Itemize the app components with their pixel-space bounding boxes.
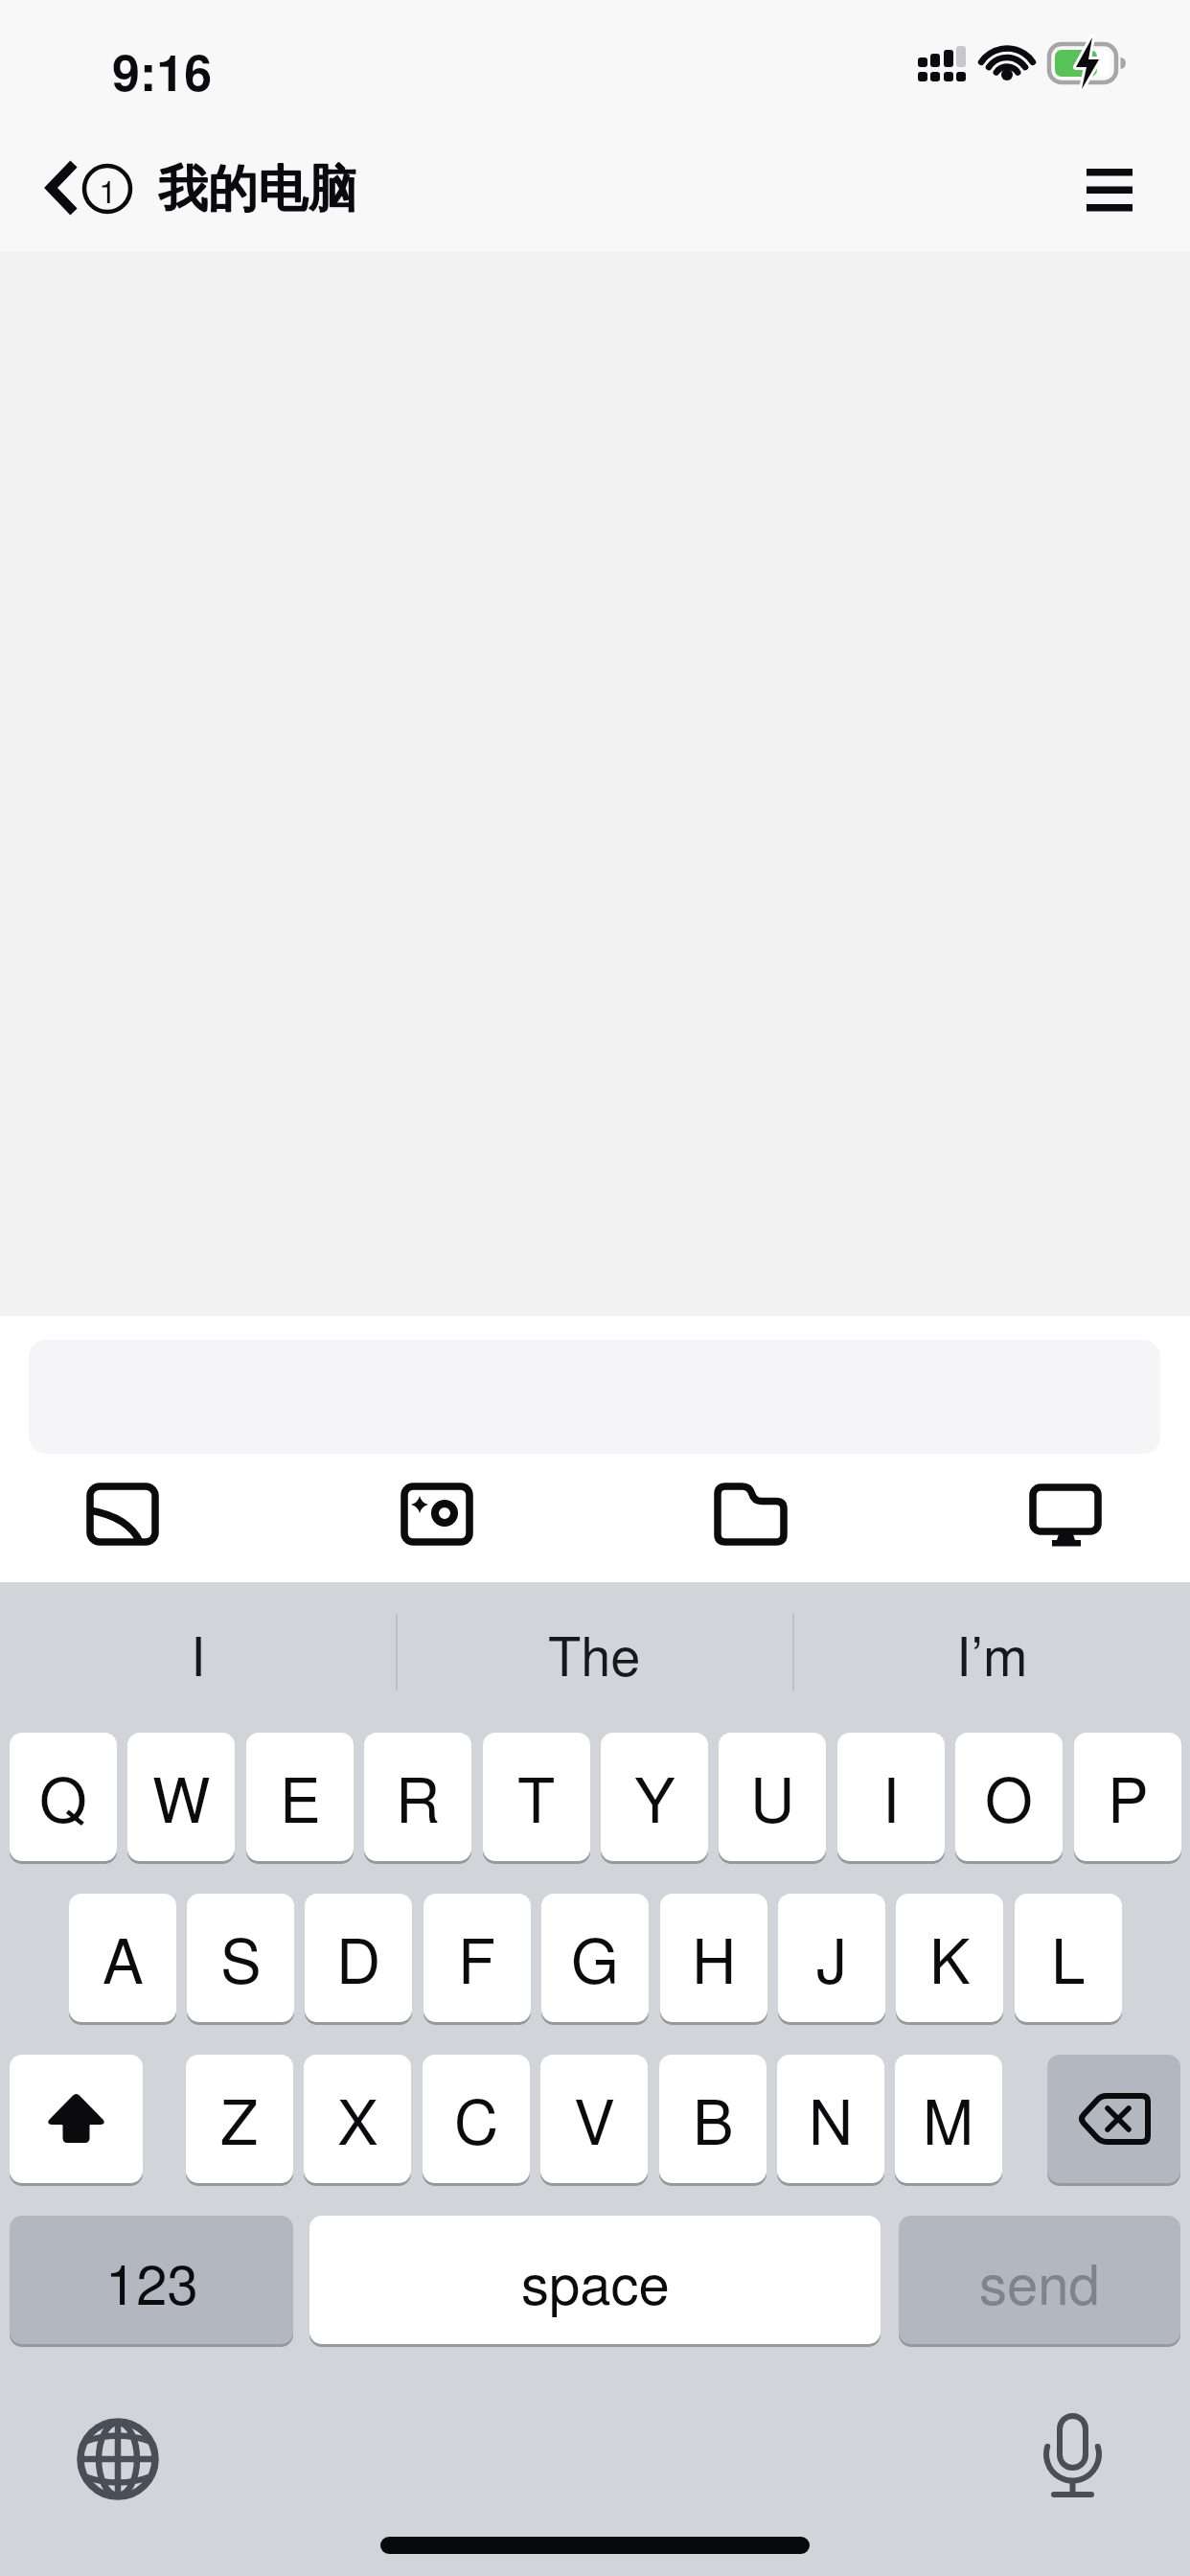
staticText: F: [458, 1914, 496, 2002]
button[interactable]: [1035, 2402, 1111, 2509]
button[interactable]: I’m: [793, 1602, 1190, 1704]
staticText: Y: [634, 1753, 675, 1841]
staticText: 我的电脑: [159, 157, 358, 220]
button[interactable]: G: [541, 1894, 649, 2022]
staticText: I’m: [956, 1615, 1028, 1691]
button[interactable]: F: [423, 1894, 531, 2022]
button[interactable]: I: [837, 1733, 945, 1861]
button[interactable]: Z: [186, 2055, 293, 2183]
button[interactable]: X: [304, 2055, 411, 2183]
staticText: H: [692, 1914, 737, 2002]
button[interactable]: D: [305, 1894, 412, 2022]
button[interactable]: T: [483, 1733, 590, 1861]
button[interactable]: [703, 1471, 799, 1557]
button[interactable]: [34, 151, 88, 224]
staticText: X: [337, 2075, 378, 2163]
button[interactable]: C: [423, 2055, 530, 2183]
button[interactable]: send: [899, 2216, 1180, 2344]
button[interactable]: [1018, 1471, 1113, 1557]
staticText: E: [280, 1753, 321, 1841]
staticText: G: [571, 1914, 619, 2002]
button[interactable]: 123: [10, 2216, 293, 2344]
button[interactable]: U: [719, 1733, 826, 1861]
button[interactable]: V: [540, 2055, 648, 2183]
button[interactable]: [1074, 153, 1143, 222]
staticText: D: [336, 1914, 381, 2002]
button[interactable]: P: [1074, 1733, 1181, 1861]
staticText: Q: [39, 1753, 87, 1841]
button[interactable]: [75, 1471, 171, 1557]
button[interactable]: M: [895, 2055, 1002, 2183]
button[interactable]: J: [778, 1894, 885, 2022]
staticText: 9:16: [112, 34, 213, 105]
button[interactable]: [10, 2055, 143, 2183]
button[interactable]: [389, 1471, 485, 1557]
button[interactable]: S: [187, 1894, 294, 2022]
button[interactable]: W: [127, 1733, 235, 1861]
staticText: Z: [220, 2075, 259, 2163]
button[interactable]: [68, 2409, 168, 2509]
button[interactable]: H: [660, 1894, 767, 2022]
staticText: space: [521, 2241, 670, 2320]
button[interactable]: The: [397, 1602, 792, 1704]
button[interactable]: O: [955, 1733, 1063, 1861]
staticText: The: [548, 1615, 641, 1691]
staticText: K: [929, 1914, 971, 2002]
staticText: N: [809, 2075, 854, 2163]
staticText: send: [979, 2241, 1100, 2320]
button[interactable]: Q: [10, 1733, 117, 1861]
staticText: T: [517, 1753, 556, 1841]
staticText: S: [220, 1914, 262, 2002]
button[interactable]: [1047, 2055, 1180, 2183]
staticText: I: [191, 1615, 206, 1691]
staticText: 我的电脑: [159, 157, 358, 220]
staticText: J: [816, 1914, 847, 2002]
staticText: L: [1051, 1914, 1086, 2002]
button[interactable]: N: [777, 2055, 884, 2183]
staticText: B: [693, 2075, 734, 2163]
staticText: A: [103, 1914, 144, 2002]
staticText: M: [923, 2075, 974, 2163]
staticText: P: [1108, 1753, 1149, 1841]
button[interactable]: Y: [601, 1733, 708, 1861]
staticText: W: [152, 1753, 211, 1841]
staticText: 1: [99, 166, 117, 213]
button[interactable]: K: [896, 1894, 1003, 2022]
staticText: V: [574, 2075, 615, 2163]
button[interactable]: I: [0, 1602, 396, 1704]
button[interactable]: B: [659, 2055, 767, 2183]
staticText: 123: [105, 2241, 198, 2320]
staticText: U: [750, 1753, 795, 1841]
staticText: C: [454, 2075, 499, 2163]
button[interactable]: R: [364, 1733, 471, 1861]
button[interactable]: E: [246, 1733, 354, 1861]
staticText: O: [985, 1753, 1033, 1841]
button[interactable]: L: [1015, 1894, 1122, 2022]
staticText: R: [396, 1753, 441, 1841]
button[interactable]: A: [69, 1894, 176, 2022]
staticText: I: [882, 1753, 900, 1841]
button[interactable]: space: [309, 2216, 881, 2344]
